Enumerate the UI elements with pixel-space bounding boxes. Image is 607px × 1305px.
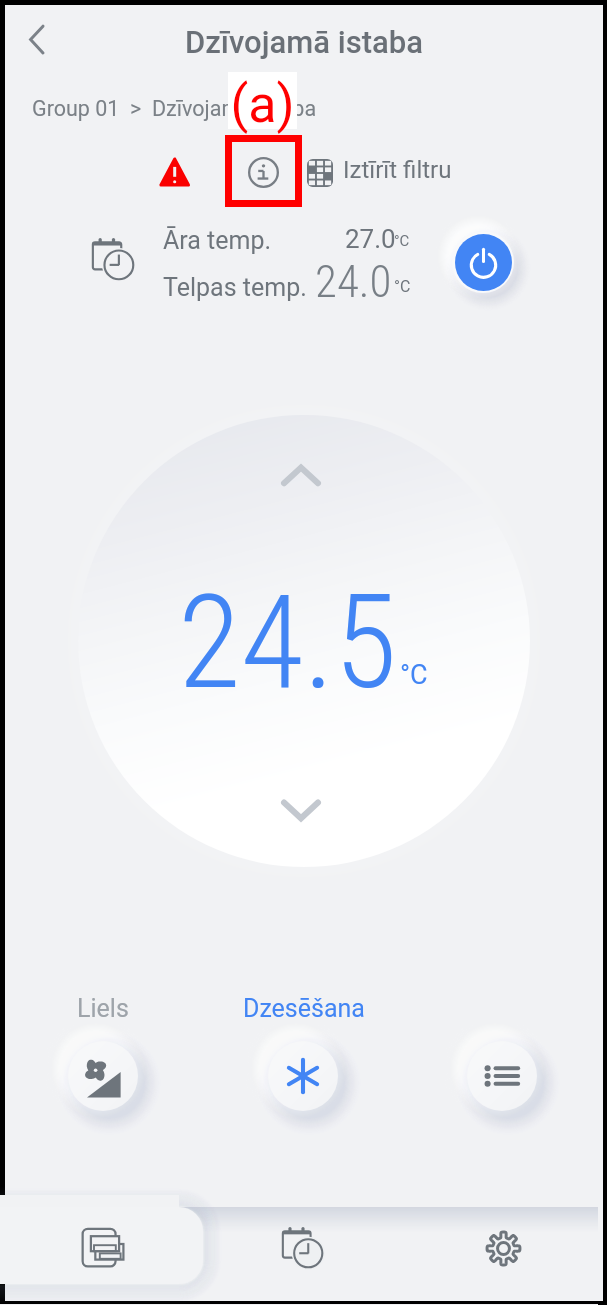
staticText: Dzīvojamā istaba [5, 24, 603, 60]
staticText: °C [394, 277, 411, 296]
staticText: Telpas temp. [163, 273, 307, 302]
staticText: Iztīrīt filtru [343, 156, 452, 184]
staticText: Āra temp. [163, 226, 272, 255]
staticText: Group 01 > Dzīvojamā istaba [32, 96, 317, 121]
button[interactable]: Fan speed [68, 1041, 138, 1111]
staticText: 27.0 [345, 224, 396, 254]
staticText: °C [394, 232, 410, 250]
button[interactable]: Iztīrīt filtru [306, 152, 451, 194]
button[interactable]: Schedule [262, 1212, 344, 1284]
button[interactable]: Decrease temperature [280, 795, 330, 845]
staticText: 24.5 [178, 567, 398, 718]
button[interactable]: Information [243, 152, 284, 193]
button[interactable]: Increase temperature [280, 460, 330, 510]
staticText: (a) [227, 74, 298, 135]
button[interactable]: Warning [155, 152, 195, 192]
staticText: Dzesēšana [243, 994, 365, 1023]
button[interactable]: Settings [462, 1212, 544, 1284]
button[interactable]: Cooling mode [268, 1041, 338, 1111]
button[interactable]: Back [12, 16, 60, 64]
staticText: Liels [77, 994, 129, 1023]
button[interactable]: Devices [0, 1207, 203, 1284]
button[interactable]: Operation list [467, 1041, 537, 1111]
staticText: 24.0 [315, 255, 392, 308]
staticText: °C [400, 659, 428, 691]
button[interactable]: Power [455, 234, 512, 291]
